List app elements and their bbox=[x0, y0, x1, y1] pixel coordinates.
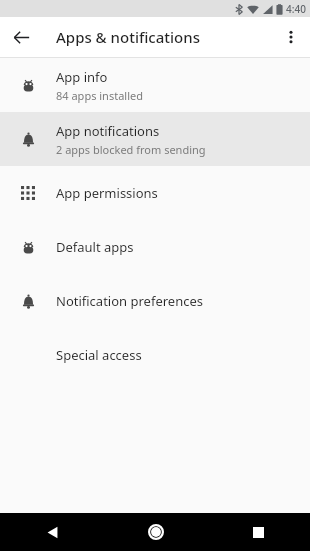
staticText: 84 apps installed bbox=[56, 88, 143, 103]
staticText: App notifications bbox=[56, 122, 160, 140]
button[interactable]: Home bbox=[104, 513, 207, 551]
button[interactable]: Notification preferences bbox=[0, 274, 310, 328]
staticText: Notification preferences bbox=[56, 292, 203, 310]
staticText: App permissions bbox=[56, 184, 158, 202]
button[interactable]: App info bbox=[0, 58, 310, 112]
staticText: 4:40 bbox=[286, 2, 306, 16]
button[interactable]: App permissions bbox=[0, 166, 310, 220]
button[interactable]: Default apps bbox=[0, 220, 310, 274]
staticText: 2 apps blocked from sending bbox=[56, 142, 206, 157]
button[interactable]: Special access bbox=[0, 328, 310, 382]
button[interactable]: More options bbox=[276, 22, 306, 52]
staticText: App info bbox=[56, 68, 108, 86]
button[interactable]: Back bbox=[6, 22, 36, 52]
staticText: Special access bbox=[56, 346, 142, 364]
staticText: Apps & notifications bbox=[56, 27, 200, 47]
button[interactable]: App notifications bbox=[0, 112, 310, 166]
button[interactable]: Back bbox=[0, 513, 104, 551]
staticText: Default apps bbox=[56, 238, 134, 256]
button[interactable]: Recent apps bbox=[207, 513, 310, 551]
